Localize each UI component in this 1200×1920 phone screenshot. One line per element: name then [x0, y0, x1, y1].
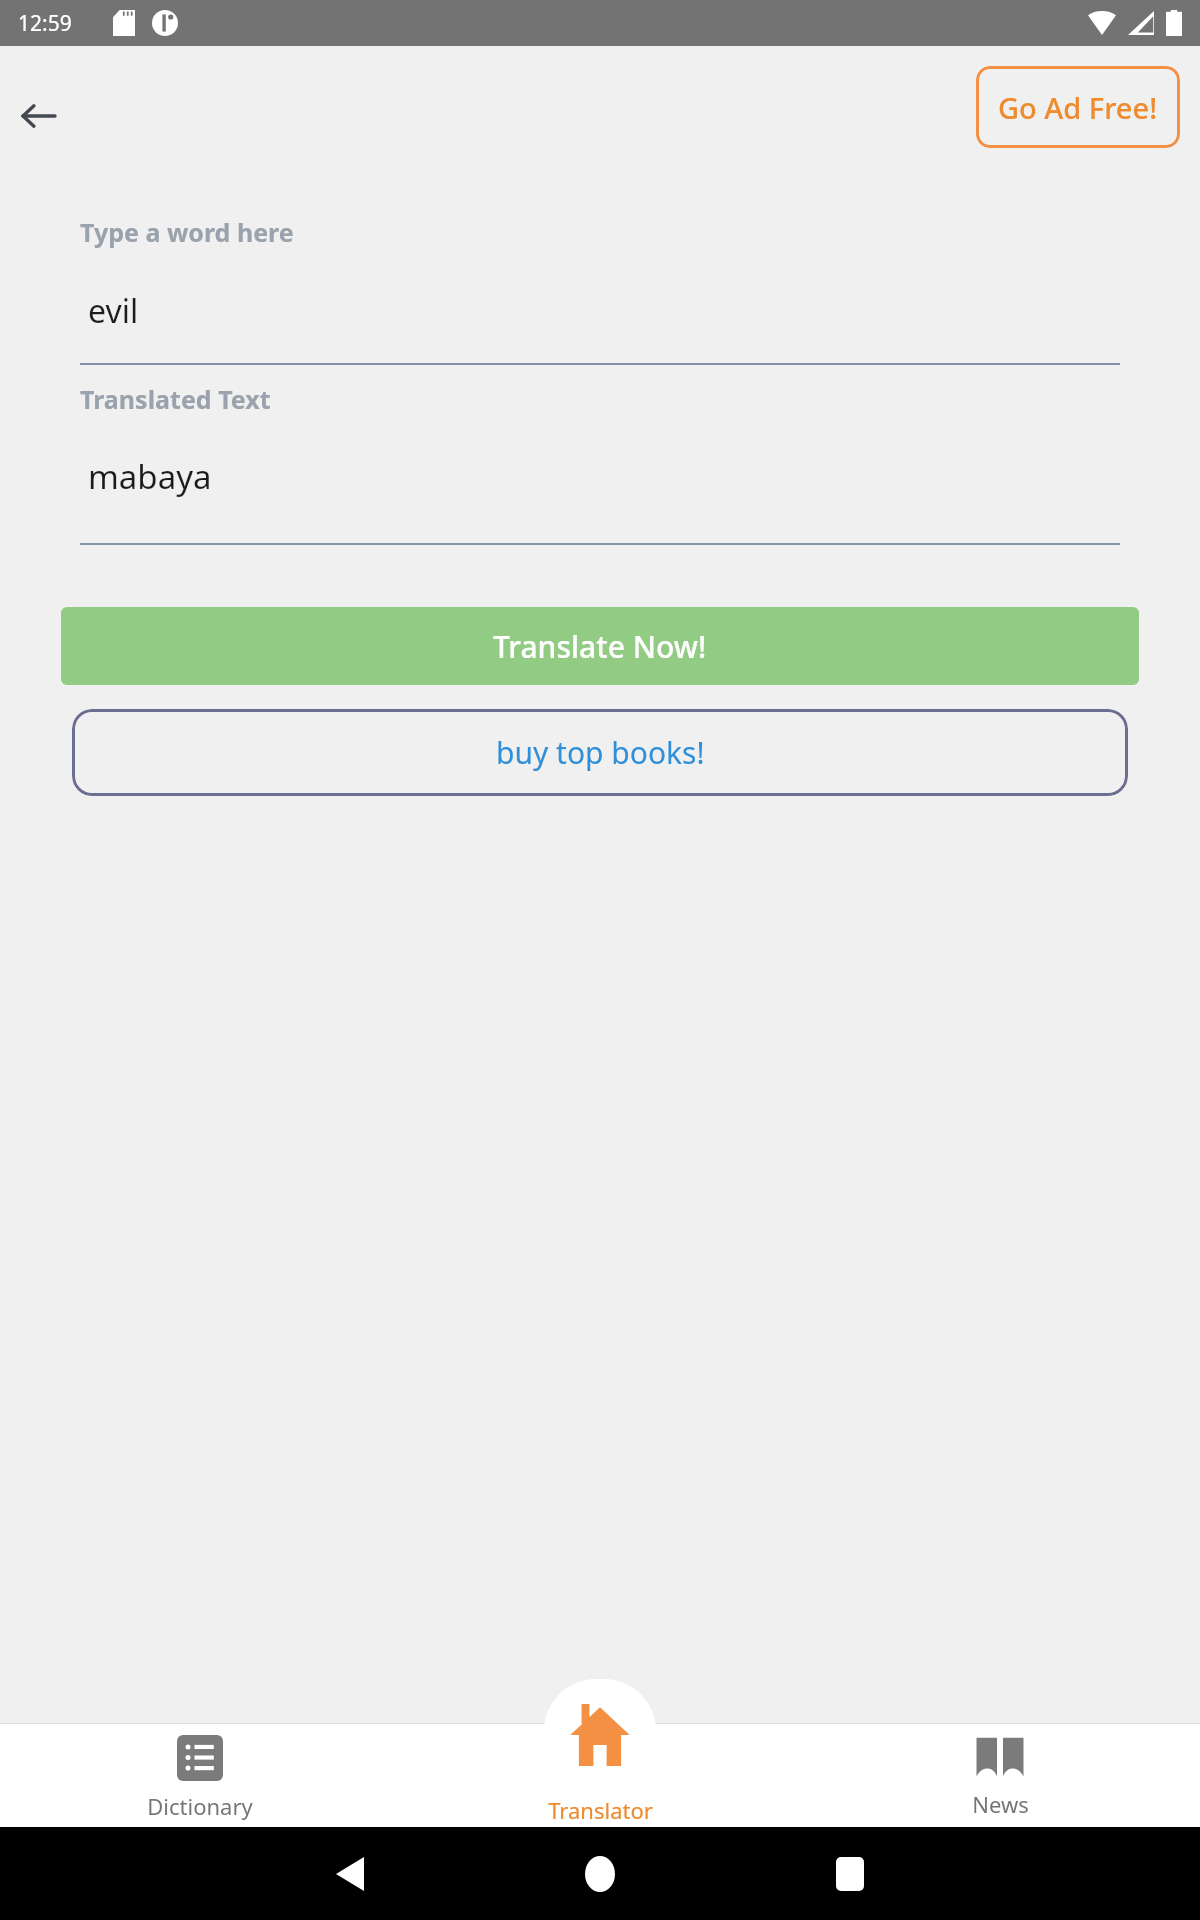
button[interactable]: News	[800, 1723, 1200, 1827]
button[interactable]: Recent apps	[810, 1827, 890, 1920]
button[interactable]: Home	[560, 1834, 640, 1914]
staticText: Dictionary	[147, 1791, 253, 1821]
button[interactable]: Back	[12, 90, 64, 142]
button[interactable]: Dictionary	[0, 1723, 400, 1827]
button[interactable]: Go Ad Free!	[976, 66, 1180, 148]
button[interactable]: Translate Now!	[61, 607, 1139, 685]
staticText: Go Ad Free!	[998, 88, 1158, 127]
staticText: buy top books!	[496, 732, 705, 773]
staticText: 12:59	[18, 9, 72, 38]
staticText: evil	[88, 289, 139, 333]
button[interactable]: Translator home	[544, 1679, 656, 1783]
staticText: Translate Now!	[493, 626, 707, 667]
staticText: Translated Text	[80, 382, 271, 416]
button[interactable]: buy top books!	[72, 709, 1128, 796]
button[interactable]: Back	[310, 1827, 390, 1920]
staticText: Type a word here	[80, 215, 294, 249]
staticText: Translator	[548, 1795, 653, 1825]
button[interactable]: Translator	[400, 1723, 800, 1827]
staticText: mabaya	[88, 454, 212, 499]
staticText: News	[972, 1789, 1029, 1819]
